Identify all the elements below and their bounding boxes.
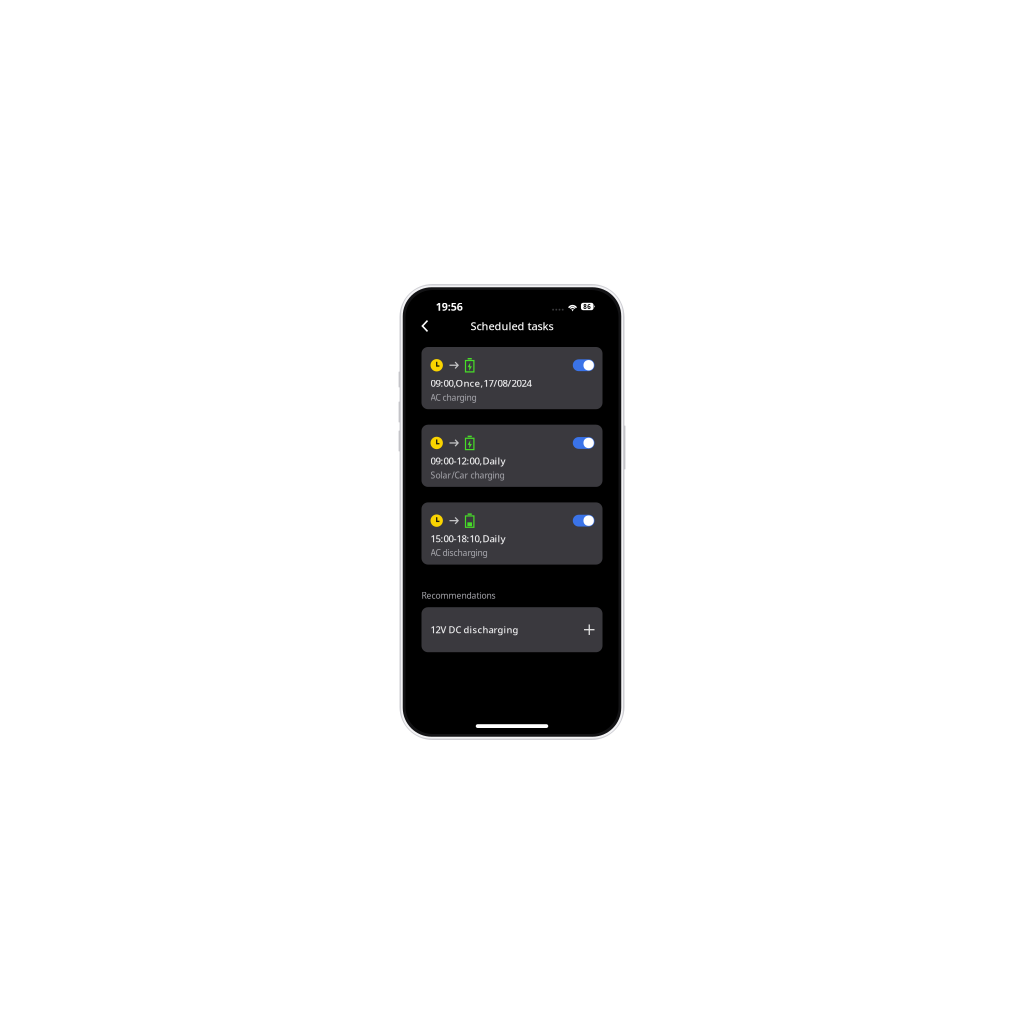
- button[interactable]: 09:00-12:00,Daily: [421, 425, 602, 487]
- button[interactable]: 09:00,Once,17/08/2024: [421, 347, 602, 409]
- button[interactable]: 15:00-18:10,Daily: [421, 502, 602, 565]
- staticText: AC discharging: [430, 547, 487, 559]
- staticText: 19:56: [436, 299, 463, 314]
- staticText: 09:00,Once,17/08/2024: [430, 376, 531, 390]
- staticText: Scheduled tasks: [470, 319, 553, 333]
- button[interactable]: Back: [421, 317, 435, 335]
- staticText: 09:00-12:00,Daily: [430, 454, 505, 467]
- button[interactable]: 12V DC discharging: [421, 607, 602, 652]
- staticText: Recommendations: [421, 590, 495, 601]
- staticText: 12V DC discharging: [430, 623, 518, 636]
- staticText: 86: [583, 302, 591, 311]
- staticText: Solar/Car charging: [430, 469, 504, 481]
- staticText: AC charging: [430, 392, 476, 403]
- staticText: 15:00-18:10,Daily: [430, 532, 505, 545]
